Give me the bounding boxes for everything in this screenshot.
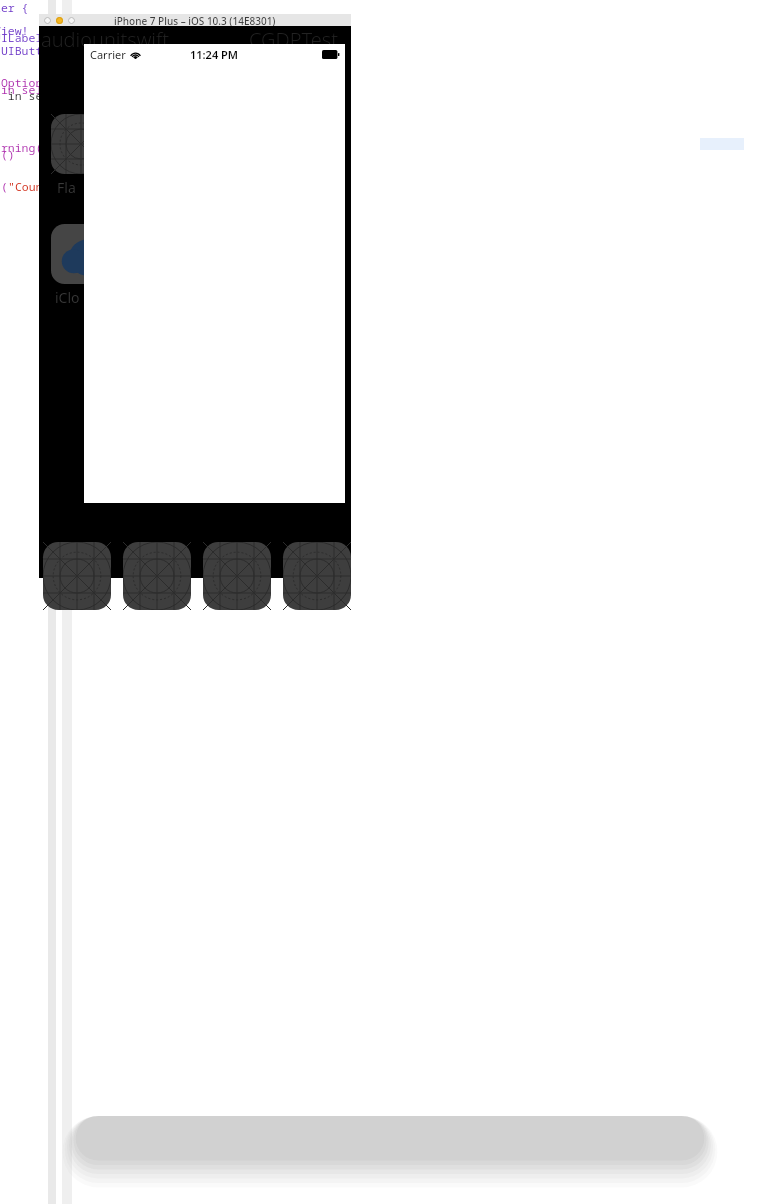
- staticText: g(): [0, 147, 15, 163]
- button[interactable]: Carrier: [84, 44, 345, 503]
- staticText: audiounitswift: [41, 26, 169, 53]
- staticText: Carrier: [90, 47, 126, 62]
- staticText: iClo: [55, 288, 80, 307]
- staticText: iPhone 7 Plus – iOS 10.3 (14E8301): [114, 14, 276, 26]
- staticText: in self.cou: [0, 82, 77, 98]
- staticText: ler {: [0, 0, 29, 16]
- button[interactable]: Minimise: [56, 17, 63, 24]
- staticText: View!: [0, 23, 29, 39]
- staticText: "Count=\(: [8, 179, 71, 195]
- staticText: 11:24 PM: [190, 47, 239, 62]
- staticText: d in sender.: [0, 88, 77, 104]
- staticText: CGDPTest: [249, 26, 338, 53]
- staticText: nOptions.tra: [0, 75, 77, 91]
- staticText: UILabel!: [0, 30, 50, 46]
- staticText: arning() {: [0, 140, 63, 156]
- button[interactable]: Close: [44, 17, 51, 24]
- staticText: UIButton): [0, 43, 63, 59]
- staticText: Fla: [57, 178, 76, 197]
- staticText: g(: [0, 179, 8, 195]
- button[interactable]: Zoom: [68, 17, 75, 24]
